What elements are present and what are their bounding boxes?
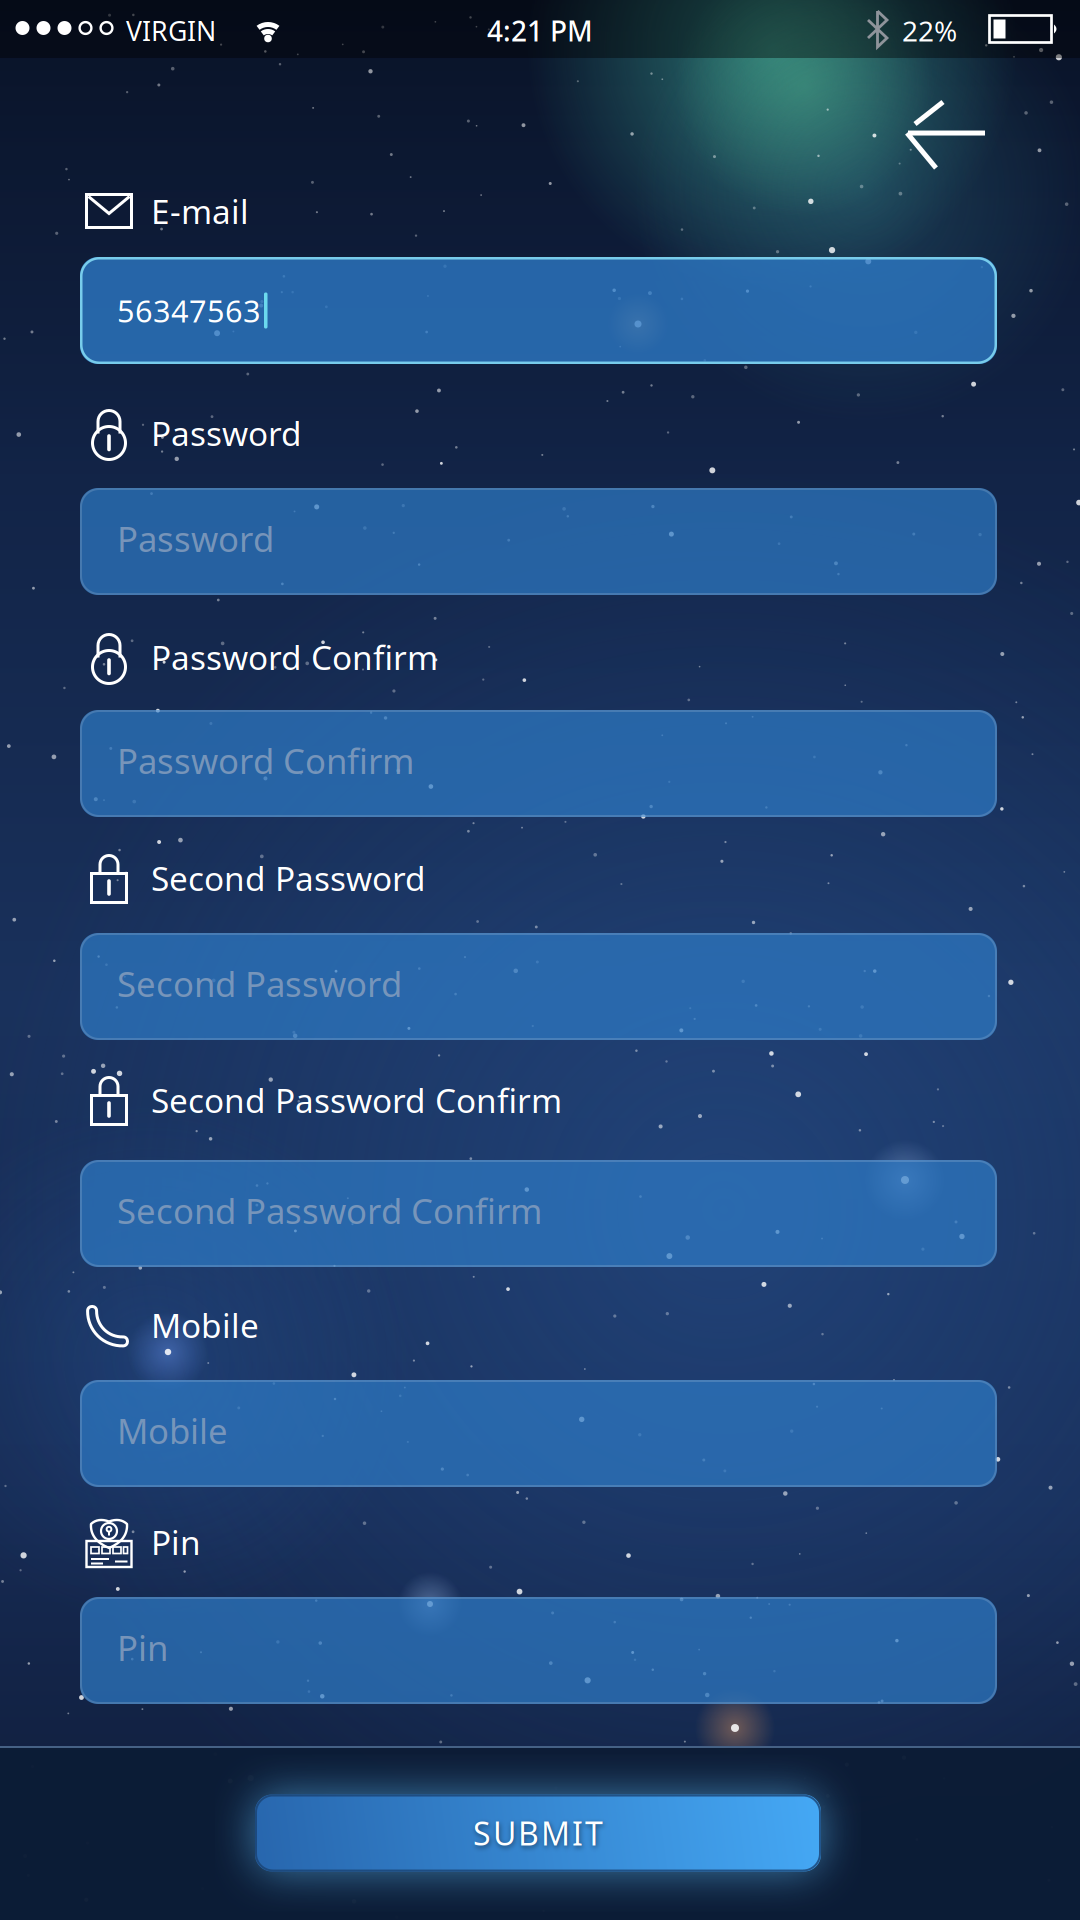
button[interactable]: Back [905, 102, 987, 170]
staticText: Second Password Confirm [117, 1187, 542, 1233]
staticText: Mobile [151, 1303, 259, 1347]
staticText: Password [117, 515, 274, 561]
staticText: 56347563 [117, 290, 261, 331]
staticText: Pin [117, 1624, 168, 1670]
staticText: Mobile [117, 1407, 228, 1453]
staticText: Second Password Confirm [151, 1078, 562, 1122]
button[interactable]: Mobile [80, 1380, 997, 1487]
staticText: Password [151, 411, 302, 455]
button[interactable]: Second Password [80, 933, 997, 1040]
button[interactable]: SUBMIT [255, 1794, 821, 1871]
button[interactable]: 56347563 [80, 257, 997, 364]
staticText: 4:21 PM [487, 12, 593, 49]
button[interactable]: Password Confirm [80, 710, 997, 817]
button[interactable]: Pin [80, 1597, 997, 1704]
staticText: Second Password [117, 960, 402, 1006]
staticText: 22% [902, 12, 957, 49]
staticText: E-mail [151, 189, 249, 233]
staticText: Password Confirm [151, 635, 438, 679]
staticText: Password Confirm [117, 737, 414, 783]
button[interactable]: Password [80, 488, 997, 595]
button[interactable]: Second Password Confirm [80, 1160, 997, 1267]
staticText: Second Password [151, 856, 426, 900]
staticText: Pin [151, 1520, 201, 1564]
staticText: VIRGIN [126, 13, 216, 48]
staticText: SUBMIT [473, 1812, 603, 1854]
